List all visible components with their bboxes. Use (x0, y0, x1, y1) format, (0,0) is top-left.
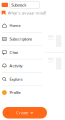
button[interactable]: Create (2, 107, 47, 118)
button[interactable]: Profile (0, 86, 65, 99)
staticText: Activity (9, 63, 22, 68)
button[interactable]: Explore (0, 73, 65, 86)
staticText: Profile (9, 90, 20, 95)
staticText: Home (9, 23, 20, 28)
staticText: What's on your mind? (7, 10, 46, 15)
button[interactable]: What's on your mind? (0, 11, 65, 15)
button[interactable]: Activity (0, 59, 65, 72)
staticText: Subscriptions (9, 36, 32, 42)
button[interactable]: Chat (0, 46, 65, 59)
button[interactable]: Substack (10, 1, 40, 9)
staticText: Create (16, 110, 28, 115)
staticText: Chat (9, 50, 17, 55)
staticText: Substack (11, 2, 26, 7)
button[interactable]: Home (0, 19, 65, 32)
button[interactable]: Subscriptions (0, 32, 65, 45)
staticText: Explore (9, 76, 22, 82)
